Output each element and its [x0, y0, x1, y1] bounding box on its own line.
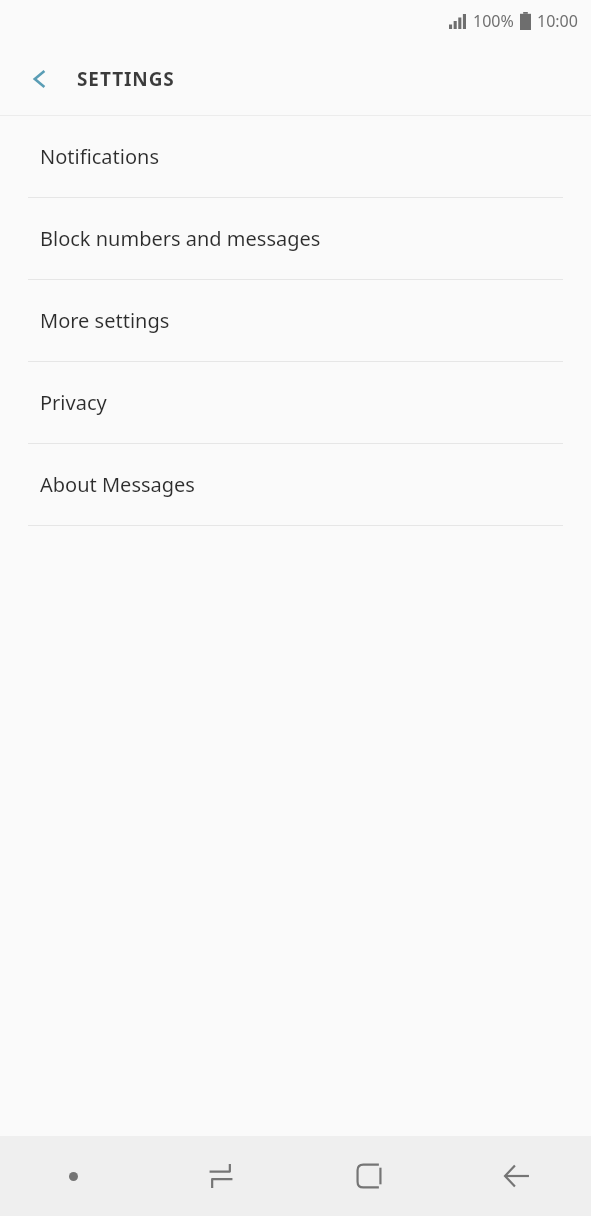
button[interactable]: About Messages — [0, 444, 591, 526]
staticText: About Messages — [40, 471, 195, 498]
staticText: 100% — [473, 10, 514, 32]
staticText: Block numbers and messages — [40, 225, 321, 252]
button[interactable]: Back — [443, 1136, 591, 1216]
button[interactable]: Privacy — [0, 362, 591, 444]
staticText: Notifications — [40, 143, 159, 170]
button[interactable]: Home — [295, 1136, 443, 1216]
button[interactable]: Notifications — [0, 116, 591, 198]
button[interactable]: Block numbers and messages — [0, 198, 591, 280]
button[interactable]: Menu indicator — [0, 1136, 147, 1216]
button[interactable]: Recent apps — [147, 1136, 295, 1216]
staticText: Privacy — [40, 389, 107, 416]
staticText: More settings — [40, 307, 170, 334]
staticText: 10:00 — [537, 10, 578, 32]
button[interactable]: More settings — [0, 280, 591, 362]
staticText: SETTINGS — [77, 66, 175, 92]
button[interactable]: Back — [18, 57, 62, 101]
